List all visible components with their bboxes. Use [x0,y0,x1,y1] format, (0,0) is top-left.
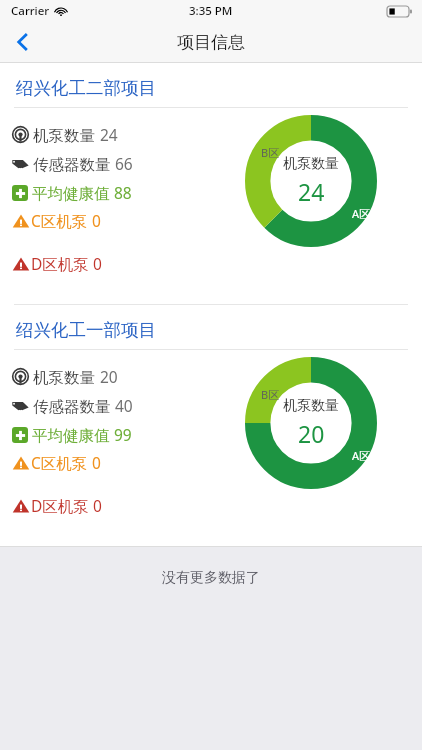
button[interactable]: 绍兴化工一部项目 [0,305,422,546]
staticText: 没有更多数据了 [162,569,260,587]
staticText: 66 [115,153,133,174]
staticText: 平均健康值 [32,424,114,445]
staticText: 机泵数量 [33,366,100,387]
staticText: 0 [93,253,102,274]
staticText: C区机泵 [31,210,92,231]
staticText: Carrier [11,3,50,19]
staticText: 平均健康值 [32,182,114,203]
staticText: 绍兴化工一部项目 [16,319,156,341]
staticText: 传感器数量 [33,395,115,416]
staticText: B区 [261,145,280,160]
staticText: A区 [352,448,371,463]
staticText: 24 [298,176,325,207]
staticText: 40 [115,395,133,416]
staticText: 机泵数量 [33,124,100,145]
staticText: 99 [114,424,132,445]
staticText: 88 [114,182,132,203]
staticText: 0 [92,210,101,231]
staticText: 绍兴化工二部项目 [16,77,156,99]
staticText: A区 [352,206,371,221]
staticText: 0 [93,495,102,516]
staticText: 3:35 PM [189,3,233,19]
staticText: C区机泵 [31,452,92,473]
staticText: 传感器数量 [33,153,115,174]
staticText: D区机泵 [31,495,93,516]
staticText: B区 [261,387,280,402]
staticText: 20 [100,366,118,387]
staticText: D区机泵 [31,253,93,274]
staticText: 20 [298,418,325,449]
staticText: 机泵数量 [283,397,339,415]
button[interactable]: 绍兴化工二部项目 [0,63,422,304]
staticText: 0 [92,452,101,473]
button[interactable]: Back [0,22,46,62]
staticText: 24 [100,124,118,145]
staticText: 机泵数量 [283,155,339,173]
staticText: 项目信息 [177,32,245,53]
